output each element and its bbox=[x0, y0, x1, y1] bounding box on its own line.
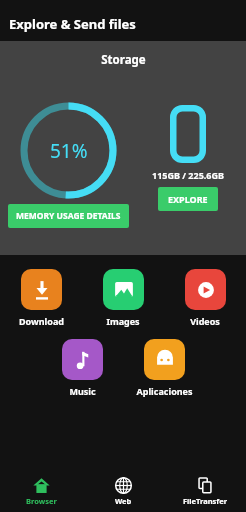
button[interactable]: Aplicaciones bbox=[123, 339, 205, 397]
button[interactable]: Browser bbox=[0, 470, 82, 512]
staticText: Images bbox=[106, 315, 140, 327]
staticText: Browser bbox=[26, 496, 57, 506]
button[interactable]: Download bbox=[0, 269, 82, 327]
staticText: Videos bbox=[190, 315, 220, 327]
button[interactable]: Videos bbox=[164, 269, 246, 327]
staticText: Web bbox=[115, 496, 132, 506]
button[interactable]: Music bbox=[41, 339, 123, 397]
staticText: Music bbox=[69, 385, 96, 397]
button[interactable]: FileTransfer bbox=[164, 470, 246, 512]
staticText: 115GB / 225.6GB bbox=[152, 169, 224, 181]
staticText: 51% bbox=[50, 138, 88, 164]
button[interactable]: Web bbox=[82, 470, 164, 512]
staticText: FileTransfer bbox=[183, 496, 228, 506]
staticText: MEMORY USAGE DETAILS bbox=[16, 210, 121, 222]
button[interactable]: MEMORY USAGE DETAILS bbox=[8, 204, 129, 228]
button[interactable]: Images bbox=[82, 269, 164, 327]
staticText: EXPLORE bbox=[168, 193, 208, 205]
staticText: Explore & Send files bbox=[9, 15, 136, 33]
staticText: Download bbox=[19, 315, 64, 327]
staticText: Storage bbox=[101, 52, 146, 68]
staticText: Aplicaciones bbox=[136, 385, 193, 397]
button[interactable]: EXPLORE bbox=[158, 187, 218, 211]
